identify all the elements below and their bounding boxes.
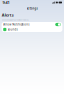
staticText: Sounds	[8, 28, 18, 31]
staticText: 9:41	[2, 0, 9, 5]
button[interactable]: Allow Notifications	[2, 22, 62, 27]
staticText: Alerts	[2, 12, 14, 18]
staticText: Allow Notifications	[3, 23, 29, 26]
staticText: Choose how alerts are delivered to you	[2, 19, 29, 21]
staticText: Settings	[26, 7, 37, 10]
